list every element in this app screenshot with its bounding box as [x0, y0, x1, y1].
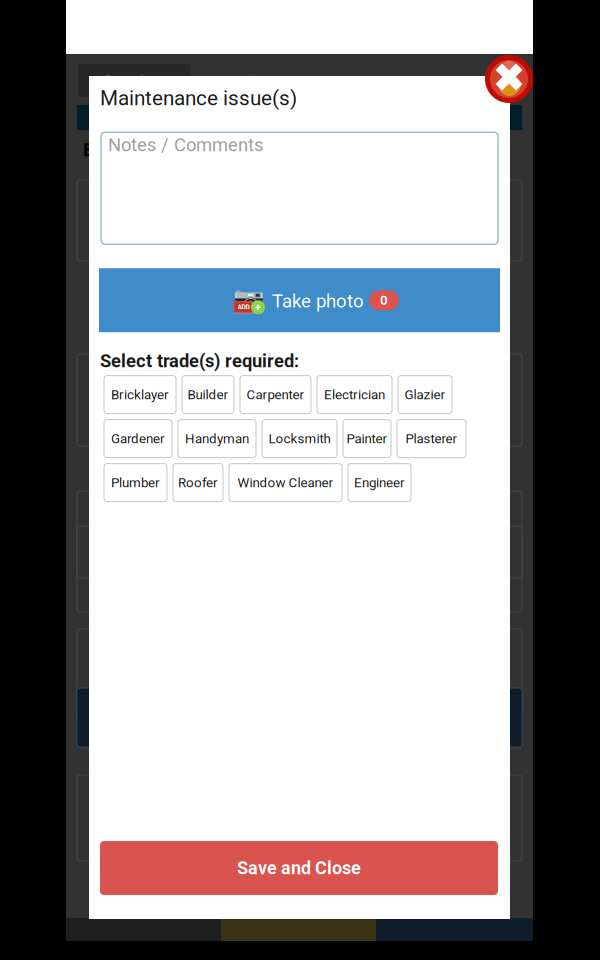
button[interactable]: Glazier — [398, 376, 452, 414]
button[interactable]: Plumber — [104, 464, 167, 502]
staticText: Locksmith — [268, 431, 330, 446]
button[interactable]: Close — [485, 55, 533, 103]
staticText: Notes / Comments — [108, 134, 263, 156]
staticText: ADD — [237, 303, 249, 311]
button[interactable]: 📷 — [99, 268, 500, 332]
staticText: Gardener — [111, 431, 165, 446]
staticText: Plasterer — [405, 431, 457, 446]
staticText: Overview — [103, 72, 163, 89]
staticText: Plumber — [111, 475, 160, 490]
staticText: Equipment — [246, 72, 316, 89]
button[interactable]: Bricklayer — [104, 376, 176, 414]
staticText: Bricklayer — [111, 387, 169, 402]
staticText: Equipment details — [83, 139, 234, 161]
staticText: 📷 — [232, 285, 264, 315]
staticText: Carpenter — [246, 387, 304, 402]
staticText: Window Cleaner — [237, 475, 333, 490]
button[interactable]: Painter — [343, 420, 391, 458]
staticText: Engineer — [354, 475, 405, 490]
staticText: 0 — [380, 292, 388, 308]
staticText: Save and Close — [237, 857, 361, 879]
staticText: + — [255, 301, 261, 313]
button[interactable]: Plasterer — [397, 420, 466, 458]
staticText: Builder — [187, 387, 228, 402]
button[interactable]: Save and Close — [100, 841, 498, 895]
staticText: Painter — [346, 431, 387, 446]
staticText: Maintenance issue(s) — [100, 86, 297, 110]
staticText: Select trade(s) required: — [100, 350, 299, 372]
button[interactable]: Builder — [182, 376, 234, 414]
staticText: Glazier — [404, 387, 445, 402]
button[interactable]: Carpenter — [240, 376, 311, 414]
button[interactable]: Gardener — [104, 420, 172, 458]
staticText: Roofer — [178, 475, 218, 490]
button[interactable]: Engineer — [348, 464, 411, 502]
button[interactable]: Electrician — [317, 376, 392, 414]
button[interactable]: Roofer — [173, 464, 223, 502]
staticText: Electrician — [324, 387, 385, 402]
button[interactable]: Window Cleaner — [229, 464, 342, 502]
staticText: Handyman — [185, 431, 249, 446]
button[interactable]: Locksmith — [262, 420, 337, 458]
staticText: Take photo — [272, 290, 364, 312]
button[interactable]: Handyman — [178, 420, 256, 458]
